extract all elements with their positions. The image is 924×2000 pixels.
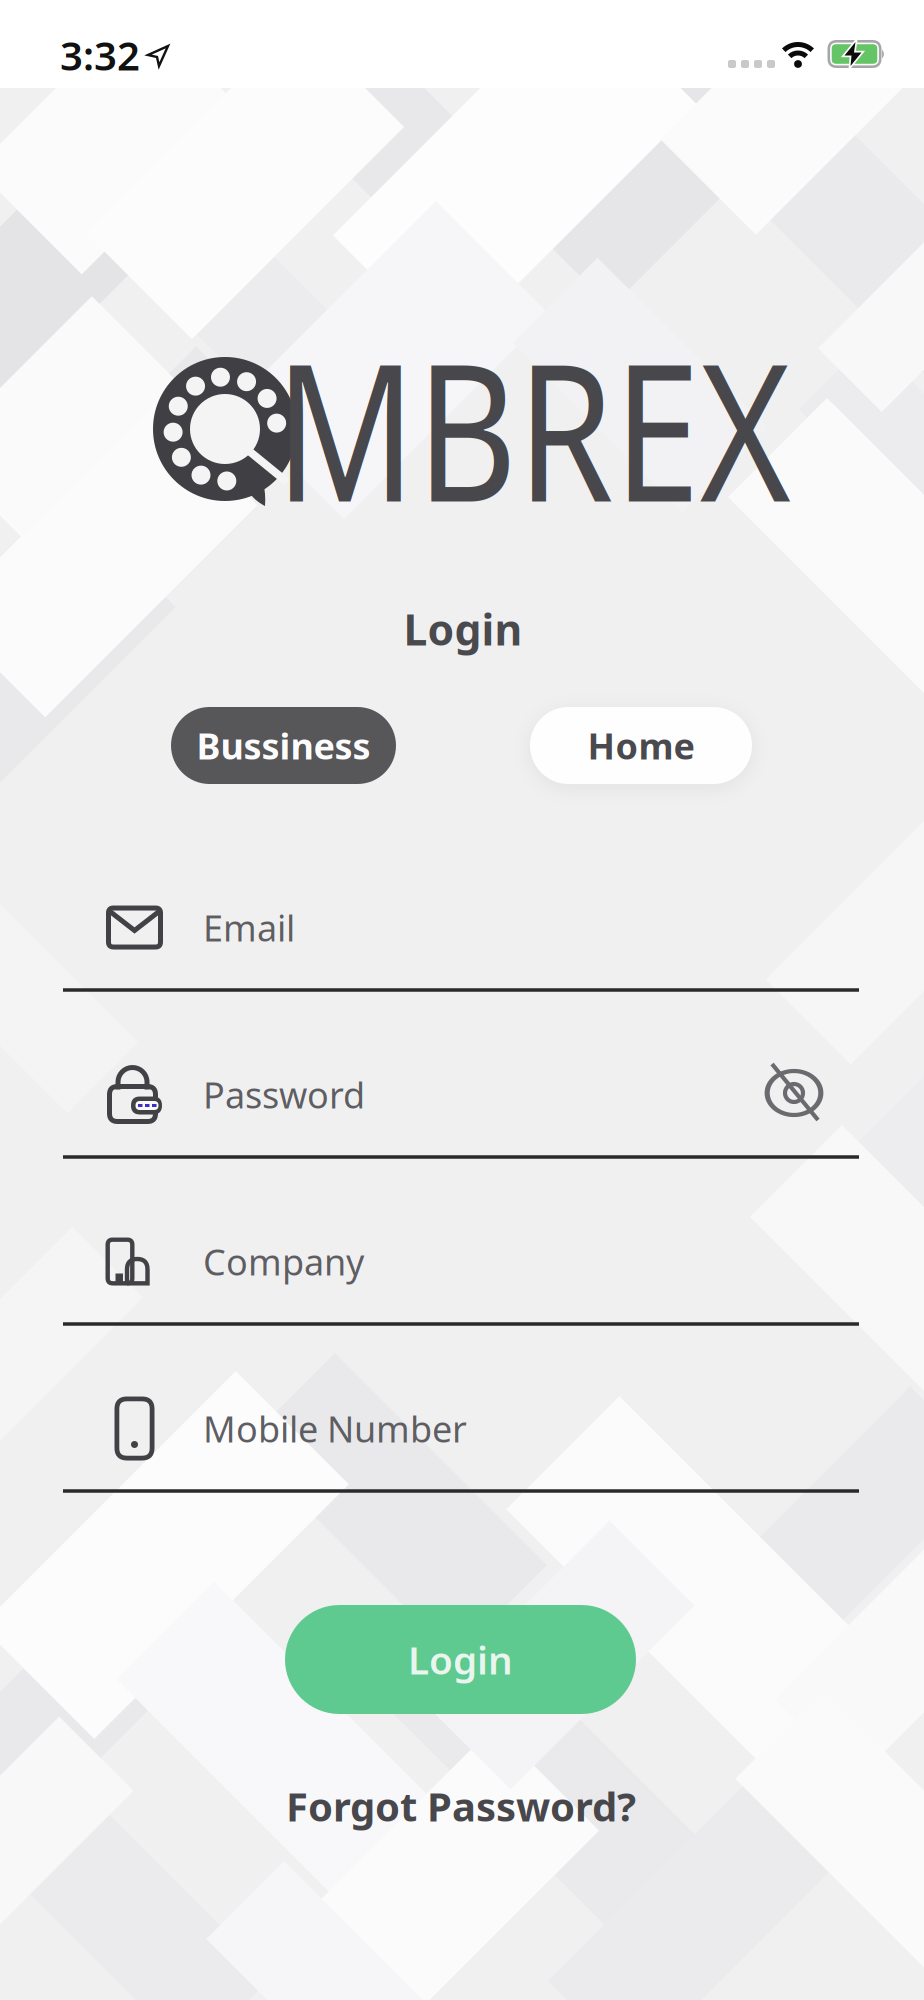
button[interactable]: Company: [63, 1222, 859, 1328]
button[interactable]: Email: [63, 888, 859, 994]
staticText: 3:32: [60, 28, 140, 81]
staticText: Login: [408, 1634, 513, 1685]
button[interactable]: Bussiness: [171, 707, 396, 784]
staticText: Bussiness: [196, 722, 370, 769]
button[interactable]: Show password: [764, 1063, 824, 1123]
staticText: Email: [203, 904, 295, 951]
button[interactable]: Password: [63, 1055, 859, 1161]
staticText: Password: [203, 1071, 365, 1118]
staticText: Login: [403, 601, 522, 657]
staticText: MBREX: [218, 302, 847, 554]
button[interactable]: Forgot Password?: [286, 1779, 636, 1832]
button[interactable]: Mobile Number: [63, 1389, 859, 1495]
staticText: Forgot Password?: [286, 1779, 636, 1832]
button[interactable]: Login: [285, 1605, 636, 1714]
button[interactable]: Home: [530, 707, 752, 784]
staticText: Mobile Number: [203, 1405, 467, 1452]
staticText: Home: [587, 722, 694, 769]
staticText: Company: [203, 1238, 364, 1285]
